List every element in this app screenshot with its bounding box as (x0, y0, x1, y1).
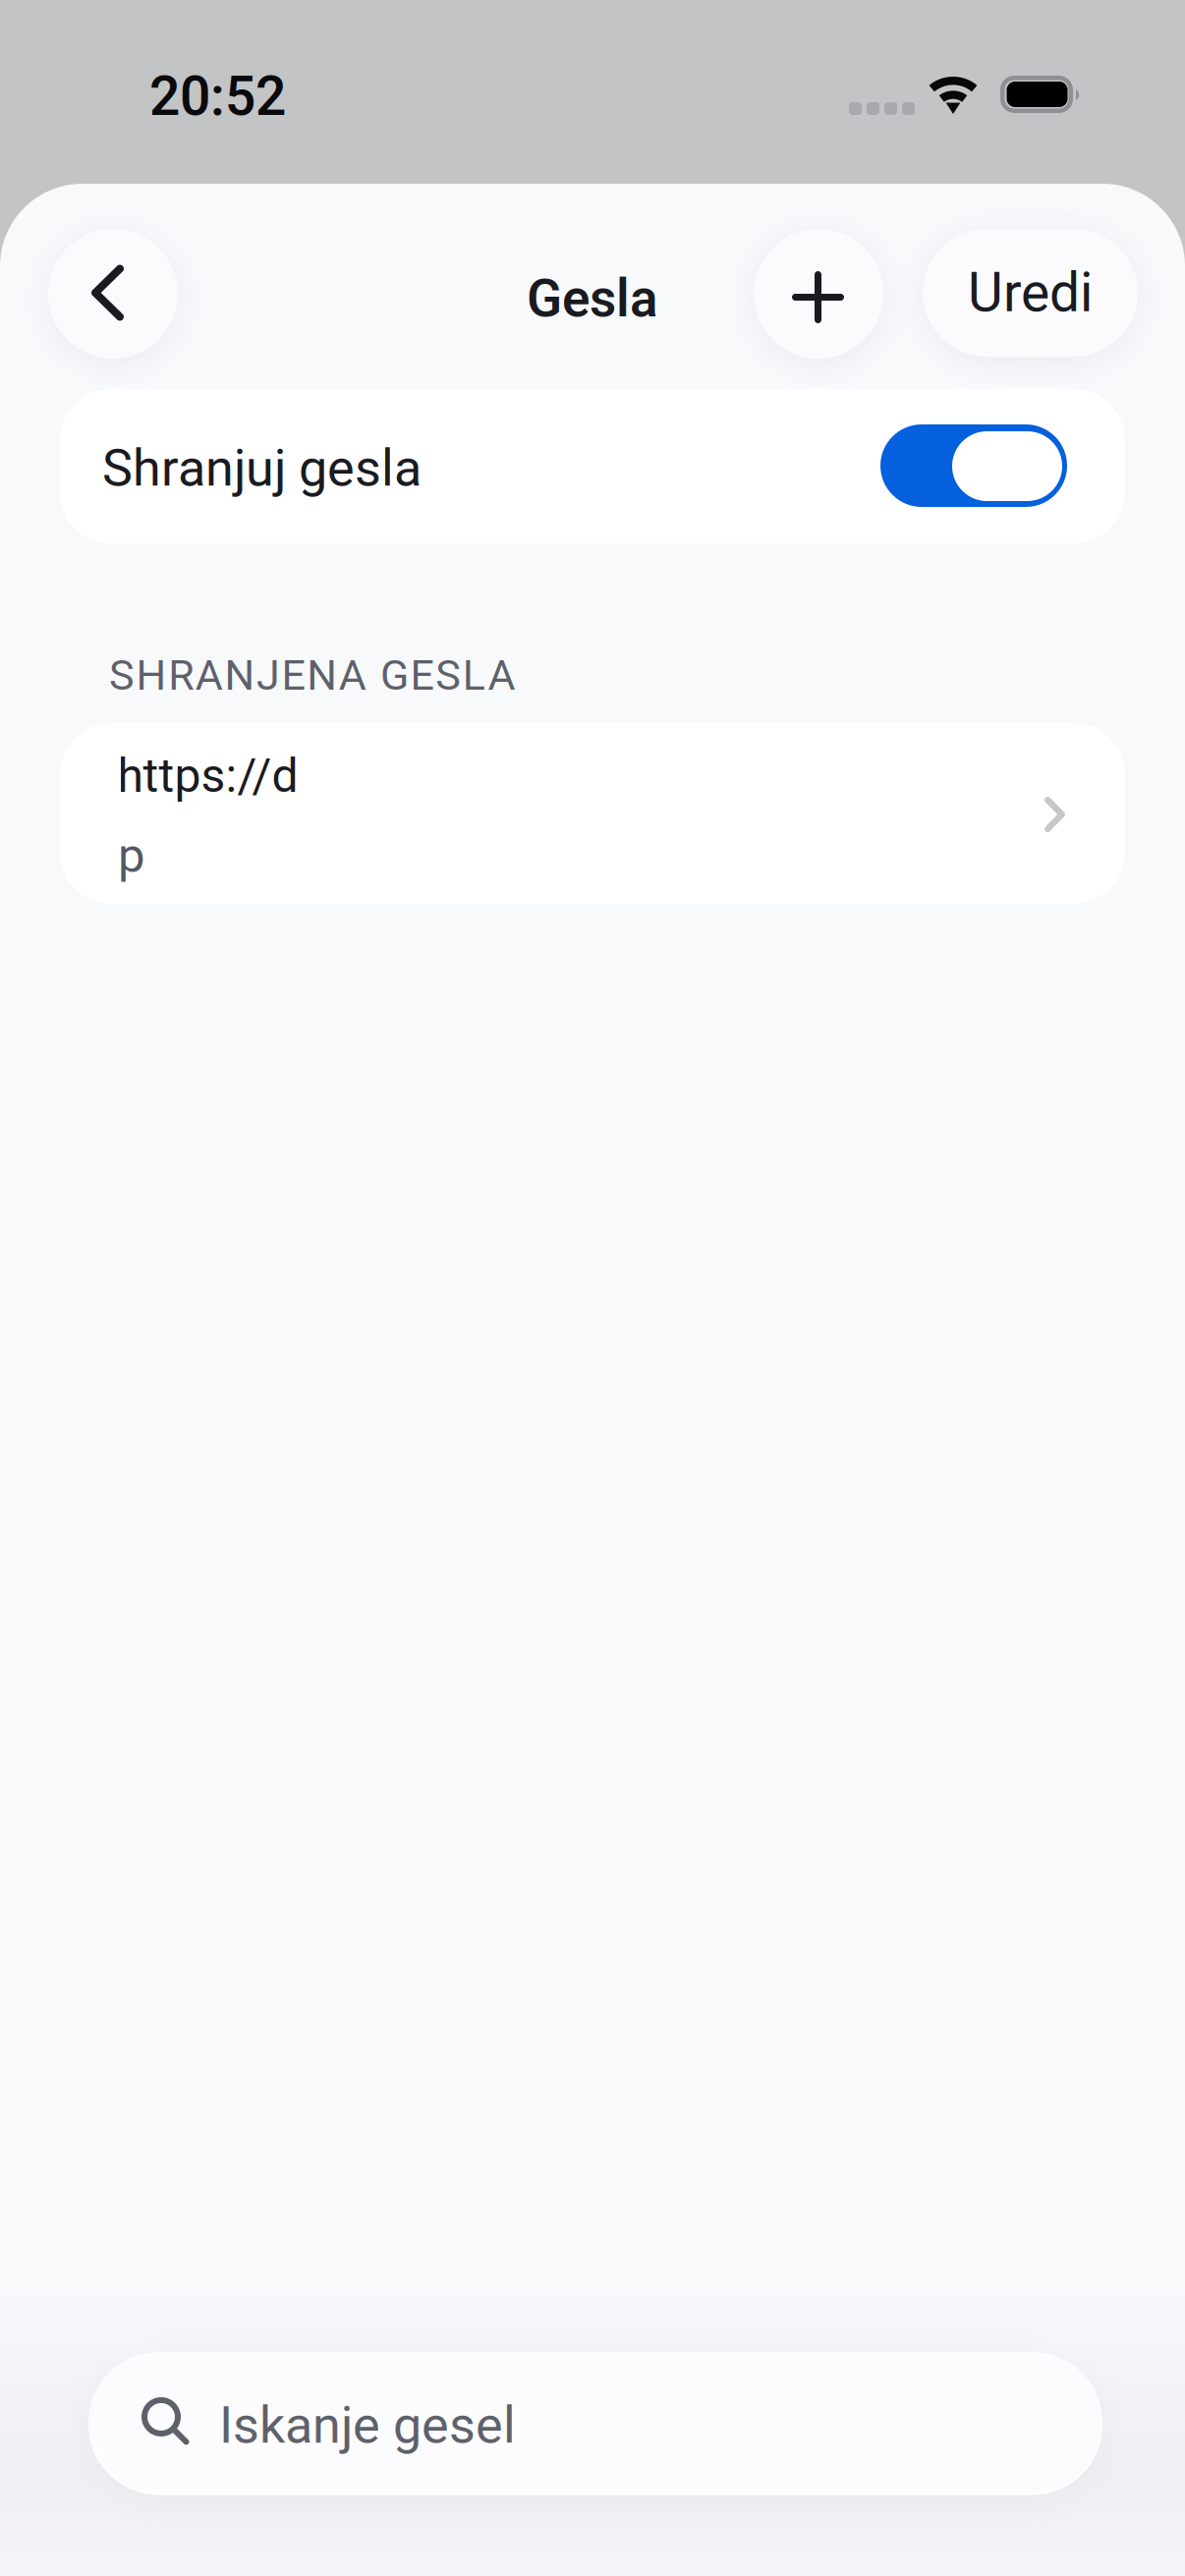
button[interactable]: Add password (754, 229, 883, 359)
button[interactable]: Back (48, 229, 178, 359)
button[interactable]: Uredi (923, 229, 1138, 357)
staticText: Uredi (968, 261, 1093, 325)
staticText: Gesla (527, 268, 658, 329)
staticText: 20:52 (149, 65, 286, 128)
staticText: Shranjuj gesla (102, 438, 422, 498)
staticText: Iskanje gesel (219, 2395, 516, 2455)
staticText: SHRANJENA GESLA (109, 650, 515, 700)
button[interactable]: Shranjuj gesla (60, 389, 1125, 543)
button[interactable]: https://d (60, 723, 1125, 904)
staticText: https://d (117, 748, 298, 803)
staticText: p (118, 827, 145, 884)
button[interactable]: Iskanje gesel (88, 2352, 1102, 2492)
